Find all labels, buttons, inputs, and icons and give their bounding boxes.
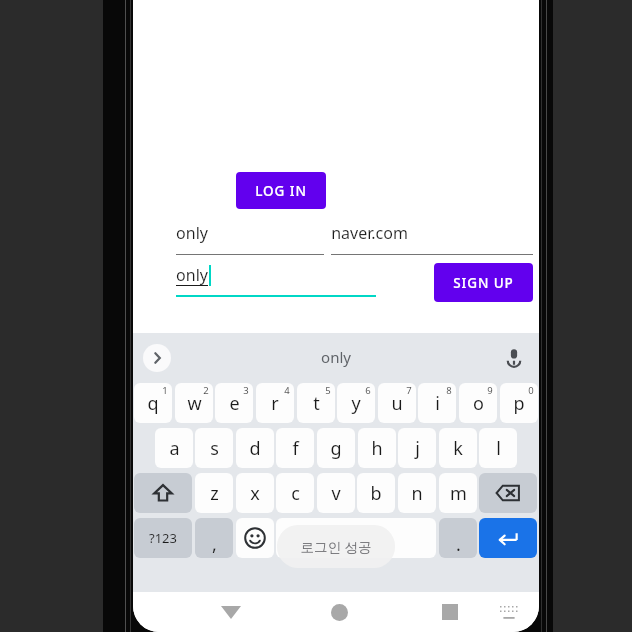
button[interactable]: Enter — [479, 518, 537, 558]
button[interactable]: . — [439, 518, 477, 558]
button[interactable]: u — [378, 383, 416, 423]
button[interactable]: o — [459, 383, 497, 423]
button[interactable]: p — [500, 383, 538, 423]
button[interactable]: w — [175, 383, 213, 423]
button[interactable]: naver.com — [331, 222, 533, 255]
button[interactable]: , — [195, 518, 233, 558]
staticText: 1 — [162, 384, 168, 397]
button[interactable]: x — [236, 473, 274, 513]
staticText: s — [210, 436, 219, 461]
staticText: a — [169, 436, 180, 461]
staticText: g — [330, 436, 342, 461]
button[interactable]: y — [337, 383, 375, 423]
staticText: t — [313, 391, 320, 416]
staticText: w — [187, 391, 202, 416]
button[interactable]: k — [439, 428, 477, 468]
staticText: only — [321, 347, 351, 367]
staticText: h — [371, 436, 383, 461]
staticText: SIGN UP — [453, 274, 514, 292]
staticText: j — [415, 436, 420, 461]
button[interactable]: q — [134, 383, 172, 423]
staticText: v — [331, 481, 341, 506]
button[interactable]: h — [358, 428, 396, 468]
staticText: c — [291, 481, 300, 506]
staticText: 3 — [243, 384, 249, 397]
button[interactable]: f — [276, 428, 314, 468]
button[interactable]: r — [256, 383, 294, 423]
staticText: n — [411, 481, 423, 506]
button[interactable]: SIGN UP — [434, 263, 533, 302]
button[interactable]: Recent apps — [424, 592, 476, 632]
button[interactable]: Emoji — [236, 518, 274, 558]
staticText: ?123 — [149, 529, 177, 547]
button[interactable]: e — [215, 383, 253, 423]
button[interactable]: Voice input — [501, 344, 527, 370]
button[interactable]: LOG IN — [236, 172, 326, 209]
staticText: f — [292, 436, 299, 461]
button[interactable]: j — [398, 428, 436, 468]
button[interactable]: v — [317, 473, 355, 513]
staticText: y — [351, 391, 361, 416]
staticText: 8 — [446, 384, 452, 397]
staticText: 9 — [487, 384, 493, 397]
staticText: b — [370, 481, 382, 506]
staticText: only — [176, 264, 208, 286]
button[interactable]: Home — [309, 592, 369, 632]
button[interactable]: n — [398, 473, 436, 513]
staticText: . — [456, 532, 461, 557]
button[interactable]: s — [195, 428, 233, 468]
staticText: q — [147, 391, 159, 416]
button[interactable]: d — [236, 428, 274, 468]
button[interactable]: m — [439, 473, 477, 513]
staticText: e — [229, 391, 240, 416]
staticText: 7 — [406, 384, 412, 397]
button[interactable]: c — [276, 473, 314, 513]
button[interactable]: l — [479, 428, 517, 468]
staticText: 2 — [203, 384, 209, 397]
button[interactable]: Delete — [479, 473, 537, 513]
staticText: l — [496, 436, 501, 461]
button[interactable]: ?123 — [134, 518, 192, 558]
staticText: m — [450, 481, 467, 506]
staticText: u — [391, 391, 403, 416]
button[interactable]: only — [176, 222, 324, 255]
button[interactable]: t — [297, 383, 335, 423]
staticText: o — [473, 391, 484, 416]
staticText: i — [435, 391, 440, 416]
staticText: r — [271, 391, 279, 416]
button[interactable]: Switch keyboard — [485, 592, 533, 632]
staticText: LOG IN — [255, 182, 307, 200]
staticText: x — [250, 481, 260, 506]
staticText: d — [249, 436, 261, 461]
button[interactable]: g — [317, 428, 355, 468]
staticText: , — [212, 532, 217, 557]
button[interactable]: z — [195, 473, 233, 513]
staticText: only — [176, 222, 208, 244]
button[interactable]: Hide keyboard — [201, 592, 261, 632]
staticText: 6 — [365, 384, 371, 397]
button[interactable]: b — [357, 473, 395, 513]
staticText: z — [210, 481, 219, 506]
staticText: k — [453, 436, 463, 461]
staticText: 4 — [284, 384, 290, 397]
button[interactable]: a — [155, 428, 193, 468]
staticText: 5 — [325, 384, 331, 397]
staticText: p — [513, 391, 525, 416]
button[interactable]: only — [176, 263, 376, 297]
staticText: 0 — [528, 384, 534, 397]
button[interactable]: i — [418, 383, 456, 423]
button[interactable]: Shift — [134, 473, 192, 513]
staticText: 로그인 성공 — [300, 538, 372, 556]
button[interactable]: only — [321, 347, 351, 367]
button[interactable]: Expand suggestions — [143, 344, 171, 372]
button[interactable]: Space — [276, 518, 436, 558]
staticText: naver.com — [331, 222, 408, 244]
